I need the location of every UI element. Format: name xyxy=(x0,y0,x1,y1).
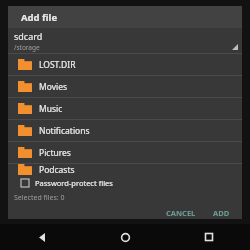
staticText: Pictures xyxy=(39,147,71,159)
staticText: Movies xyxy=(39,81,68,93)
staticText: Notifications xyxy=(39,125,90,137)
staticText: Password-protect files xyxy=(35,178,113,188)
button[interactable]: CANCEL xyxy=(160,205,202,219)
staticText: Selected files: 0 xyxy=(14,193,65,203)
staticText: /storage xyxy=(14,43,40,52)
staticText: ADD xyxy=(213,208,230,216)
button[interactable]: Podcasts xyxy=(8,164,242,175)
button[interactable]: Pictures xyxy=(8,142,242,163)
button[interactable]: Back xyxy=(0,224,84,250)
button[interactable]: ADD xyxy=(207,205,236,219)
button[interactable]: Movies xyxy=(8,76,242,97)
button[interactable]: Home xyxy=(84,224,167,250)
staticText: Music xyxy=(39,103,63,115)
button[interactable]: LOST.DIR xyxy=(8,54,242,75)
staticText: CANCEL xyxy=(166,208,196,216)
staticText: Podcasts xyxy=(39,164,75,175)
button[interactable]: Music xyxy=(8,98,242,119)
button[interactable]: Recent apps xyxy=(167,224,250,250)
staticText: sdcard xyxy=(14,30,43,42)
button[interactable]: Notifications xyxy=(8,120,242,141)
staticText: Add file xyxy=(21,11,58,24)
staticText: LOST.DIR xyxy=(39,59,76,71)
button[interactable]: Password-protect files xyxy=(8,175,242,191)
